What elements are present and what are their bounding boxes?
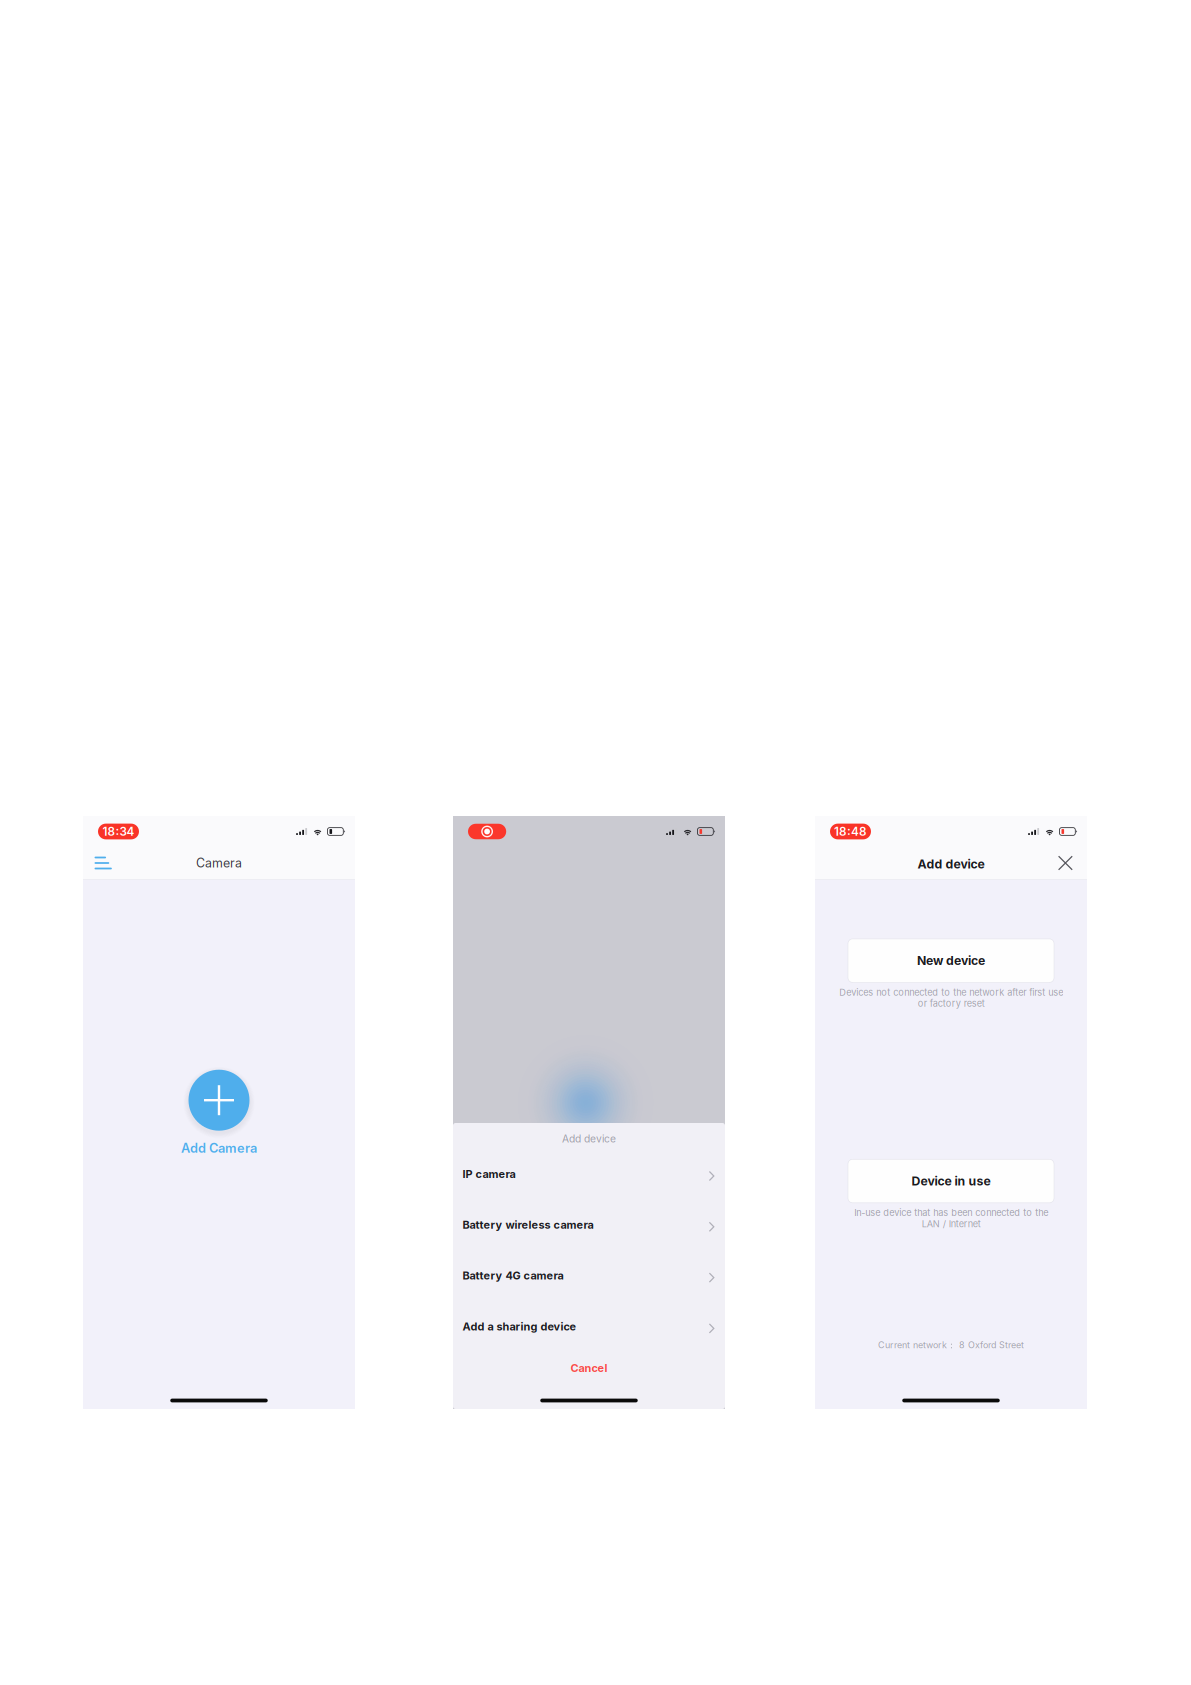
button[interactable]: Close: [1053, 850, 1078, 876]
staticText: Battery wireless camera: [463, 1218, 594, 1231]
staticText: Cancel: [570, 1361, 607, 1375]
button[interactable]: Cancel: [453, 1351, 725, 1385]
staticText: In-use device that has been connected to…: [854, 1207, 1048, 1229]
staticText: Current network： 8 Oxford Street: [878, 1339, 1024, 1351]
staticText: Add a sharing device: [463, 1320, 577, 1333]
staticText: 18:34: [102, 824, 134, 839]
button[interactable]: Battery wireless camera: [453, 1199, 725, 1250]
button[interactable]: Add Camera: [144, 1070, 294, 1160]
button[interactable]: Device in use: [848, 1159, 1054, 1203]
button[interactable]: IP camera: [453, 1149, 725, 1199]
staticText: Device in use: [911, 1174, 990, 1188]
button[interactable]: Add a sharing device: [453, 1301, 725, 1352]
staticText: Add device: [562, 1133, 616, 1145]
button[interactable]: Menu: [94, 850, 120, 876]
staticText: 18:48: [834, 824, 867, 839]
staticText: Add Camera: [181, 1140, 257, 1156]
button[interactable]: New device: [848, 939, 1054, 982]
staticText: IP camera: [463, 1167, 516, 1181]
staticText: New device: [917, 953, 985, 968]
staticText: Battery 4G camera: [463, 1269, 564, 1282]
staticText: Devices not connected to the network aft…: [839, 987, 1063, 1009]
staticText: Camera: [196, 855, 242, 870]
staticText: Add device: [917, 857, 984, 871]
button[interactable]: Battery 4G camera: [453, 1250, 725, 1301]
